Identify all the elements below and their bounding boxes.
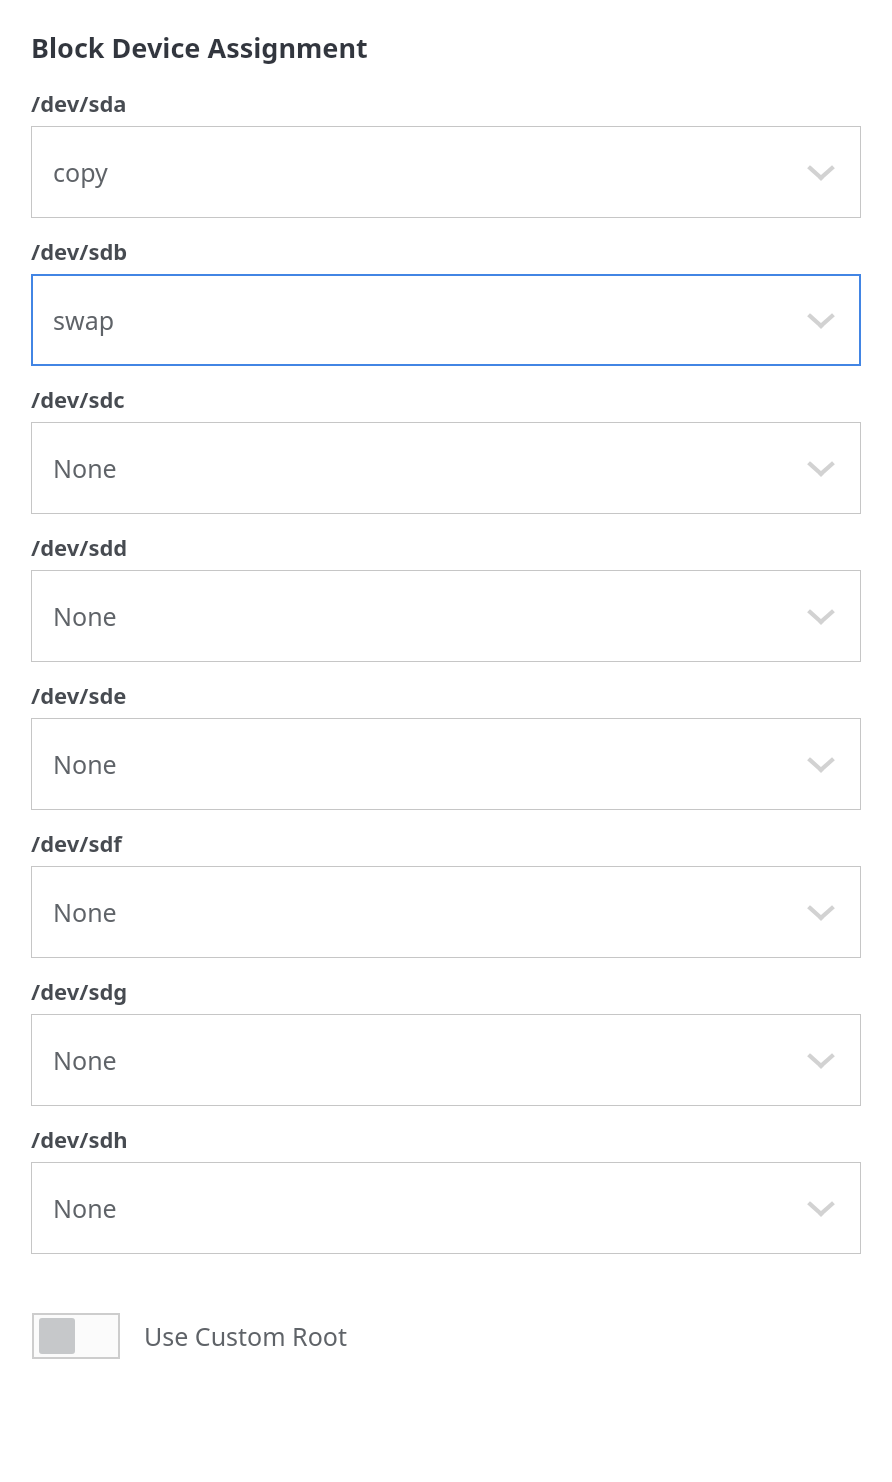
staticText: /dev/sdd bbox=[31, 532, 128, 562]
button[interactable]: None bbox=[31, 718, 861, 810]
other: Use Custom Root toggle bbox=[32, 1313, 120, 1359]
staticText: None bbox=[53, 1043, 117, 1077]
staticText: /dev/sdg bbox=[31, 976, 128, 1006]
staticText: /dev/sdb bbox=[31, 236, 128, 266]
button[interactable]: None bbox=[31, 1162, 861, 1254]
staticText: Block Device Assignment bbox=[31, 29, 368, 66]
button[interactable]: None bbox=[31, 422, 861, 514]
button[interactable]: None bbox=[31, 570, 861, 662]
staticText: Use Custom Root bbox=[144, 1319, 347, 1353]
staticText: None bbox=[53, 451, 117, 485]
button[interactable]: copy bbox=[31, 126, 861, 218]
staticText: /dev/sdf bbox=[31, 828, 122, 858]
button[interactable]: None bbox=[31, 866, 861, 958]
staticText: copy bbox=[53, 155, 108, 189]
staticText: swap bbox=[53, 303, 115, 337]
button[interactable]: swap bbox=[31, 274, 861, 366]
staticText: /dev/sdh bbox=[31, 1124, 128, 1154]
staticText: /dev/sdc bbox=[31, 384, 125, 414]
button[interactable]: Use Custom Root toggle bbox=[32, 1313, 347, 1359]
staticText: /dev/sda bbox=[31, 88, 127, 118]
button[interactable]: None bbox=[31, 1014, 861, 1106]
staticText: None bbox=[53, 599, 117, 633]
staticText: /dev/sde bbox=[31, 680, 127, 710]
staticText: None bbox=[53, 747, 117, 781]
staticText: None bbox=[53, 1191, 117, 1225]
staticText: None bbox=[53, 895, 117, 929]
